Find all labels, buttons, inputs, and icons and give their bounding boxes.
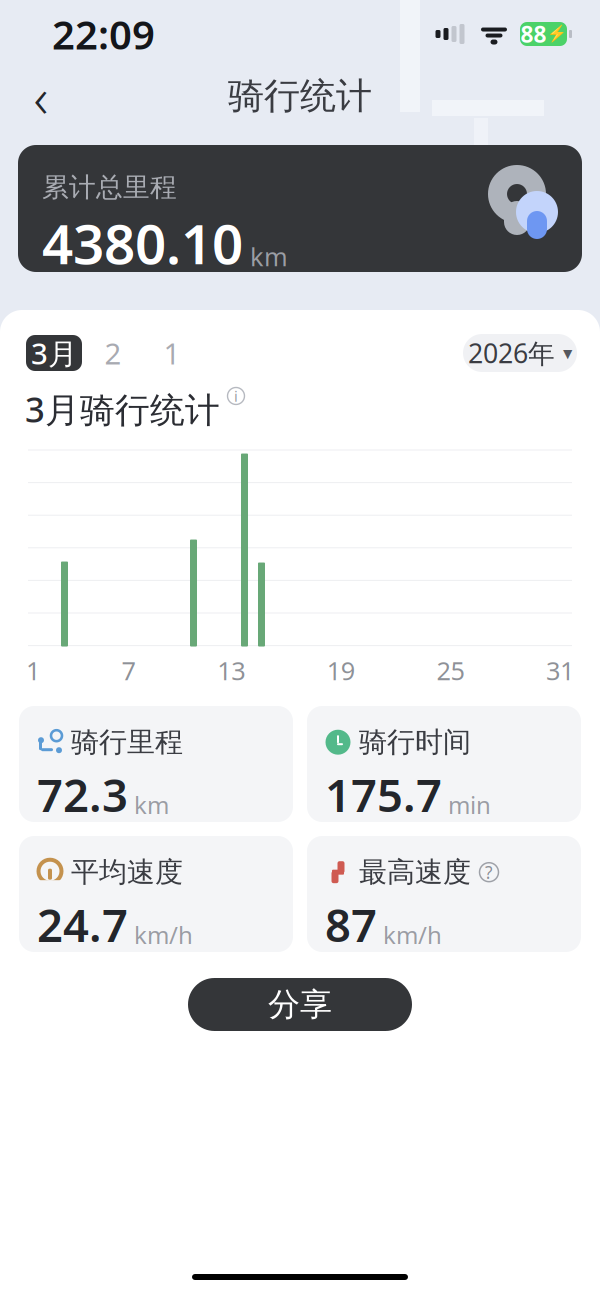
staticText: km/h — [383, 919, 442, 951]
staticText: 25 — [436, 654, 464, 687]
button[interactable]: 2026年 — [463, 334, 577, 372]
staticText: ▾ — [563, 342, 572, 364]
button[interactable]: 1 — [144, 335, 200, 371]
staticText: 3月 — [31, 333, 77, 372]
staticText: 87 — [325, 894, 377, 955]
staticText: 72.3 — [37, 764, 128, 825]
staticText: i — [234, 386, 238, 406]
staticText: 3月骑行统计 — [25, 386, 220, 432]
staticText: 最高速度 — [359, 855, 471, 889]
staticText: 19 — [327, 654, 355, 687]
staticText: 24.7 — [37, 894, 128, 955]
button[interactable]: 2 — [82, 335, 144, 371]
staticText: 累计总里程 — [42, 171, 177, 204]
staticText: km — [250, 240, 288, 273]
staticText: 2 — [104, 333, 121, 372]
button[interactable]: 平均速度 — [19, 836, 293, 952]
staticText: 分享 — [268, 985, 332, 1024]
staticText: 骑行统计 — [228, 74, 372, 118]
staticText: km — [134, 789, 169, 821]
staticText: 13 — [217, 654, 245, 687]
staticText: 骑行时间 — [359, 725, 471, 759]
staticText: 平均速度 — [71, 855, 183, 889]
staticText: 22:09 — [52, 7, 155, 60]
staticText: ? — [485, 861, 493, 884]
staticText: 4380.10 — [42, 207, 243, 279]
staticText: 175.7 — [325, 764, 442, 825]
button[interactable]: 最高速度 — [307, 836, 581, 952]
staticText: 2026年 — [468, 335, 555, 371]
button[interactable]: 说明 — [226, 386, 246, 406]
staticText: 31 — [546, 654, 574, 687]
button[interactable]: 骑行里程 — [19, 706, 293, 822]
staticText: ‹ — [33, 59, 48, 133]
staticText: km/h — [134, 919, 193, 951]
staticText: 88 — [520, 19, 546, 49]
staticText: min — [448, 789, 491, 821]
staticText: 7 — [122, 654, 136, 687]
staticText: 骑行里程 — [71, 725, 183, 759]
button[interactable]: 返回 — [12, 72, 70, 120]
staticText: 1 — [26, 654, 40, 687]
staticText: 1 — [163, 333, 180, 372]
button[interactable]: 分享 — [188, 978, 412, 1031]
button[interactable]: 3月 — [26, 335, 82, 371]
staticText: ⚡ — [546, 25, 566, 43]
button[interactable]: 骑行时间 — [307, 706, 581, 822]
